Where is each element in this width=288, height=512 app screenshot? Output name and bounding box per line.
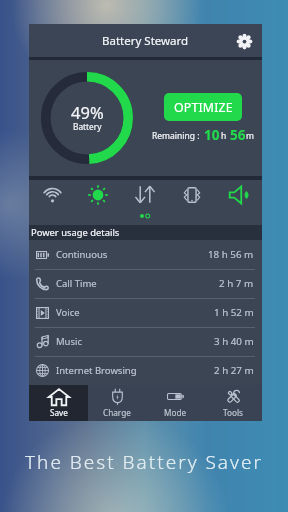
- staticText: 2 h 27 m: [214, 364, 254, 377]
- button[interactable]: Volume: [215, 181, 262, 208]
- button[interactable]: Internet Browsing: [29, 356, 262, 385]
- button[interactable]: OPTIMIZE: [164, 93, 242, 121]
- button[interactable]: Tools: [204, 385, 262, 421]
- button[interactable]: Continuous: [29, 240, 262, 269]
- staticText: Music: [56, 335, 83, 348]
- staticText: h: [221, 130, 227, 142]
- staticText: Power usage details: [31, 226, 120, 239]
- staticText: Tools: [223, 407, 243, 418]
- button[interactable]: Mode: [146, 385, 204, 421]
- staticText: 56: [230, 126, 246, 144]
- staticText: Mode: [164, 407, 187, 418]
- staticText: Continuous: [56, 248, 108, 261]
- staticText: Battery Steward: [102, 33, 189, 49]
- staticText: OPTIMIZE: [174, 99, 233, 116]
- button[interactable]: Vibration: [168, 181, 215, 208]
- button[interactable]: Voice: [29, 298, 262, 327]
- staticText: Battery: [73, 121, 102, 132]
- staticText: 18 h 56 m: [208, 248, 254, 261]
- staticText: Call Time: [56, 277, 97, 290]
- staticText: 1 h 52 m: [214, 306, 254, 319]
- staticText: Voice: [56, 306, 80, 319]
- button[interactable]: Call Time: [29, 269, 262, 298]
- staticText: Save: [50, 407, 68, 418]
- button[interactable]: Charge: [88, 385, 146, 421]
- button[interactable]: Mobile data: [121, 181, 168, 208]
- staticText: Internet Browsing: [56, 364, 137, 377]
- staticText: 3 h 40 m: [214, 335, 254, 348]
- staticText: Charge: [103, 407, 131, 418]
- staticText: m: [246, 130, 254, 142]
- button[interactable]: Settings: [232, 29, 256, 53]
- button[interactable]: Wi-Fi: [29, 181, 75, 208]
- staticText: Remaining :: [152, 130, 200, 142]
- staticText: The Best Battery Saver: [25, 449, 263, 475]
- button[interactable]: Music: [29, 327, 262, 356]
- button[interactable]: Save: [29, 385, 88, 421]
- button[interactable]: Brightness: [75, 181, 121, 208]
- staticText: 49%: [71, 101, 104, 123]
- staticText: 10: [204, 126, 220, 144]
- staticText: 2 h 7 m: [219, 277, 254, 290]
